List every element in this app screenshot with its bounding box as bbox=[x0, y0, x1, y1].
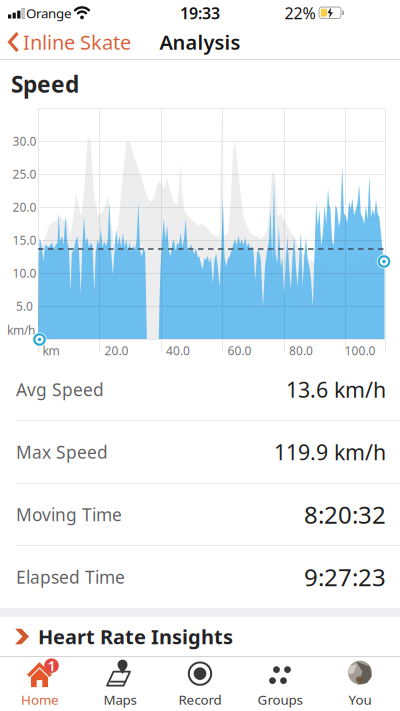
staticText: 20.0 bbox=[12, 199, 36, 215]
staticText: 80.0 bbox=[289, 342, 313, 358]
button[interactable]: 1 bbox=[0, 656, 80, 710]
button[interactable]: Heart Rate Insights bbox=[0, 617, 400, 656]
staticText: 8:20:32 bbox=[304, 499, 386, 530]
staticText: Maps bbox=[103, 691, 136, 708]
staticText: Record bbox=[178, 691, 221, 708]
staticText: 9:27:23 bbox=[304, 561, 386, 593]
staticText: km bbox=[42, 342, 59, 358]
button[interactable]: Record bbox=[160, 656, 240, 710]
staticText: 13.6 km/h bbox=[286, 375, 386, 404]
staticText: You bbox=[348, 691, 371, 708]
staticText: 22% bbox=[284, 2, 315, 24]
staticText: 1 bbox=[47, 656, 55, 675]
staticText: Groups bbox=[257, 691, 302, 708]
staticText: 30.0 bbox=[12, 133, 36, 149]
staticText: Speed bbox=[11, 69, 79, 99]
button[interactable]: You bbox=[320, 656, 400, 710]
staticText: 19:33 bbox=[180, 2, 220, 24]
staticText: Inline Skate bbox=[23, 29, 131, 55]
button[interactable]: Inline Skate bbox=[0, 26, 140, 58]
staticText: 20.0 bbox=[104, 342, 128, 358]
staticText: Avg Speed bbox=[16, 378, 104, 401]
staticText: Moving Time bbox=[16, 503, 122, 526]
staticText: Elapsed Time bbox=[16, 565, 125, 588]
staticText: Heart Rate Insights bbox=[38, 623, 233, 650]
staticText: 40.0 bbox=[166, 342, 190, 358]
staticText: 5.0 bbox=[16, 298, 33, 314]
staticText: Max Speed bbox=[16, 440, 108, 463]
staticText: 25.0 bbox=[12, 166, 36, 182]
staticText: 10.0 bbox=[12, 265, 36, 281]
staticText: Home bbox=[21, 691, 59, 708]
staticText: 15.0 bbox=[12, 232, 36, 248]
staticText: Analysis bbox=[159, 29, 240, 55]
staticText: 60.0 bbox=[227, 342, 251, 358]
staticText: Orange bbox=[26, 4, 72, 22]
button[interactable]: Groups bbox=[240, 656, 320, 710]
staticText: 119.9 km/h bbox=[274, 438, 386, 466]
staticText: km/h bbox=[7, 322, 35, 338]
staticText: 100.0 bbox=[344, 342, 375, 358]
button[interactable]: Maps bbox=[80, 656, 160, 710]
